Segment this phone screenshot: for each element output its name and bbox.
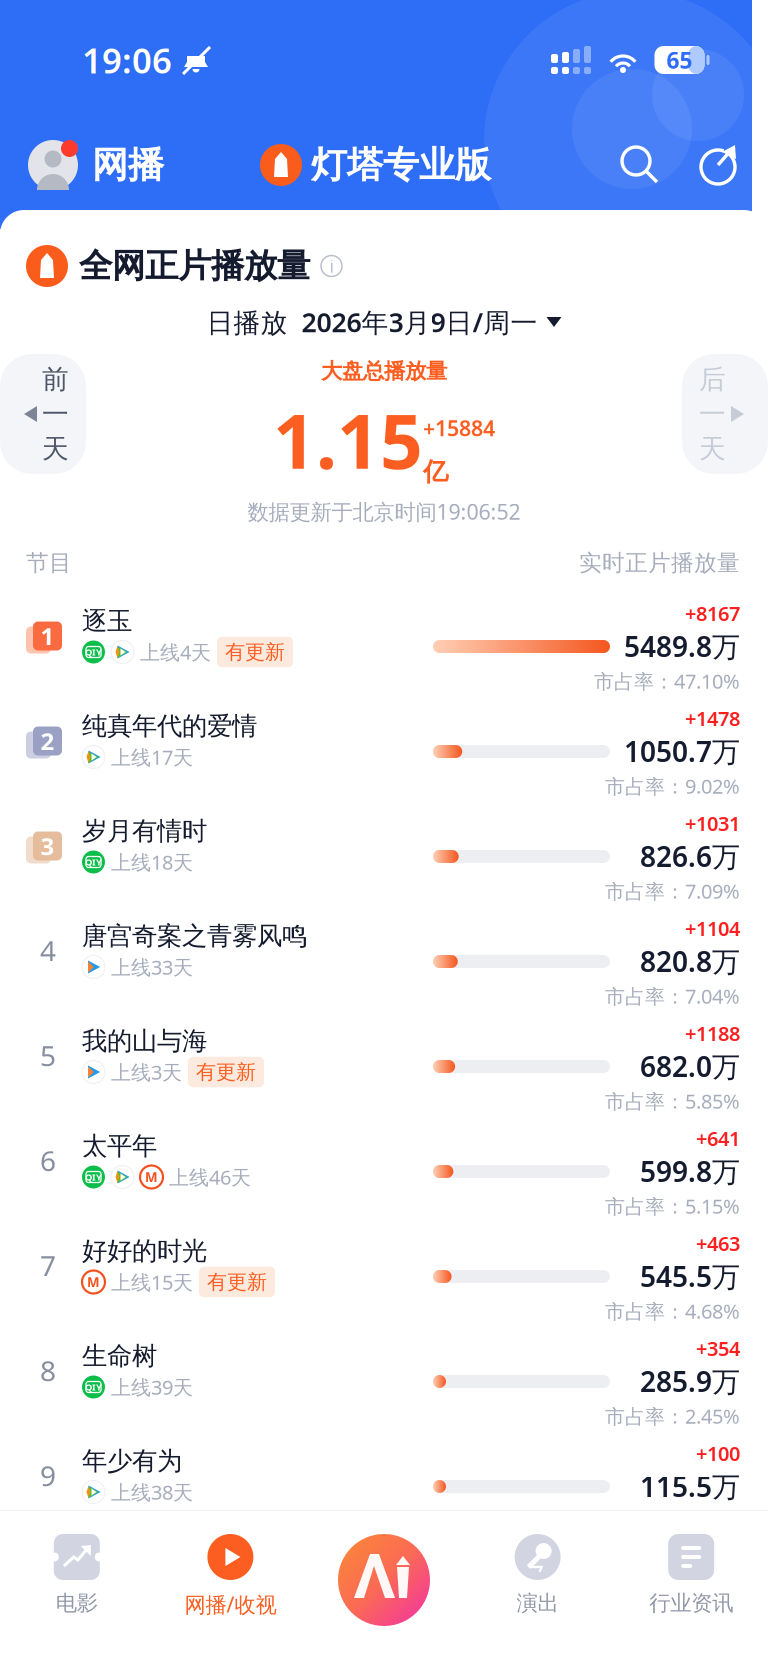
- staticText: 3: [40, 830, 54, 862]
- staticText: 820.8万: [640, 943, 740, 980]
- staticText: 65: [666, 45, 692, 75]
- staticText: 市占率：47.10%: [594, 668, 740, 694]
- button[interactable]: 分享: [692, 139, 744, 191]
- staticText: 好好的时光: [82, 1235, 207, 1266]
- staticText: 生命树: [82, 1340, 157, 1371]
- button[interactable]: 行业资讯: [614, 1534, 768, 1644]
- staticText: +100: [696, 1440, 740, 1467]
- staticText: 市占率：7.04%: [605, 983, 740, 1009]
- staticText: 1: [40, 620, 54, 652]
- staticText: 太平年: [82, 1130, 157, 1161]
- staticText: +1478: [685, 705, 740, 732]
- staticText: 上线3天: [111, 1059, 182, 1085]
- staticText: 7: [40, 1247, 56, 1284]
- button[interactable]: 网播: [20, 127, 170, 203]
- staticText: 天: [699, 432, 726, 465]
- staticText: 电影: [56, 1590, 98, 1616]
- staticText: 全网正片播放量: [79, 245, 310, 286]
- staticText: 上线46天: [169, 1164, 251, 1190]
- staticText: QIY: [85, 646, 102, 658]
- staticText: +8167: [685, 600, 740, 627]
- staticText: +15884: [423, 414, 495, 442]
- staticText: 1050.7万: [624, 733, 740, 770]
- staticText: 上线39天: [111, 1374, 193, 1400]
- staticText: 一: [42, 398, 69, 430]
- staticText: 大盘总播放量: [321, 358, 447, 384]
- staticText: 数据更新于北京时间19:06:52: [247, 497, 520, 526]
- staticText: 天: [42, 432, 69, 465]
- staticText: 我的山与海: [82, 1025, 207, 1056]
- staticText: 682.0万: [640, 1048, 740, 1085]
- staticText: 唐宫奇案之青雾风鸣: [82, 920, 307, 951]
- staticText: 灯塔专业版: [311, 143, 491, 187]
- button[interactable]: 日播放 2026年3月9日/周一: [0, 298, 768, 346]
- staticText: 日播放 2026年3月9日/周一: [206, 304, 537, 340]
- staticText: i: [329, 254, 333, 277]
- staticText: +1188: [685, 1020, 740, 1047]
- staticText: 115.5万: [640, 1468, 740, 1505]
- staticText: 亿: [423, 456, 448, 487]
- staticText: 上线4天: [140, 639, 211, 665]
- staticText: 行业资讯: [649, 1590, 733, 1616]
- staticText: +641: [696, 1125, 740, 1152]
- button[interactable]: 后: [682, 354, 768, 474]
- staticText: 节目: [26, 549, 72, 577]
- staticText: 599.8万: [640, 1153, 740, 1190]
- staticText: 前: [42, 363, 69, 396]
- button[interactable]: 演出: [461, 1534, 614, 1644]
- staticText: 8: [40, 1352, 56, 1389]
- staticText: QIY: [85, 856, 102, 868]
- staticText: M: [87, 1273, 100, 1291]
- staticText: +354: [696, 1335, 740, 1362]
- staticText: 5489.8万: [624, 628, 740, 665]
- staticText: 上线33天: [111, 954, 193, 980]
- staticText: 逐玉: [82, 605, 132, 636]
- staticText: 市占率：2.45%: [605, 1403, 740, 1429]
- staticText: 826.6万: [640, 838, 740, 875]
- button[interactable]: 前: [0, 354, 86, 474]
- button[interactable]: 灯塔专业版: [256, 127, 495, 203]
- staticText: 市占率：4.68%: [605, 1298, 740, 1324]
- staticText: 市占率：5.85%: [605, 1088, 740, 1114]
- staticText: 4: [40, 932, 56, 969]
- button[interactable]: 搜索: [614, 139, 666, 191]
- button[interactable]: 灯塔: [307, 1534, 461, 1670]
- staticText: 有更新: [207, 1270, 267, 1294]
- staticText: 1.15: [273, 390, 423, 489]
- staticText: 5: [40, 1037, 56, 1074]
- staticText: 岁月有情时: [82, 815, 207, 846]
- button[interactable]: 网播/收视: [154, 1534, 307, 1644]
- staticText: QIY: [85, 1171, 102, 1183]
- staticText: 年少有为: [82, 1445, 182, 1476]
- staticText: 一: [699, 398, 726, 430]
- staticText: 市占率：9.02%: [605, 773, 740, 799]
- staticText: 19:06: [82, 37, 172, 83]
- staticText: 实时正片播放量: [579, 549, 740, 577]
- staticText: 网播/收视: [184, 1590, 276, 1618]
- staticText: 2: [40, 725, 54, 757]
- staticText: +1031: [685, 810, 740, 837]
- staticText: 市占率：7.09%: [605, 878, 740, 904]
- staticText: 纯真年代的爱情: [82, 710, 257, 741]
- staticText: 上线38天: [111, 1479, 193, 1505]
- staticText: 上线15天: [111, 1269, 193, 1295]
- staticText: +1104: [685, 915, 740, 942]
- staticText: 有更新: [225, 640, 285, 664]
- staticText: M: [145, 1168, 158, 1186]
- staticText: 9: [40, 1457, 56, 1494]
- staticText: 演出: [517, 1590, 559, 1616]
- staticText: 6: [40, 1142, 56, 1179]
- staticText: 上线17天: [111, 744, 193, 770]
- staticText: 545.5万: [640, 1258, 740, 1295]
- button[interactable]: 电影: [0, 1534, 154, 1644]
- staticText: 上线18天: [111, 849, 193, 875]
- staticText: 后: [699, 363, 726, 396]
- staticText: 网播: [92, 143, 164, 187]
- staticText: 市占率：5.15%: [605, 1193, 740, 1219]
- staticText: 有更新: [196, 1060, 256, 1084]
- staticText: 285.9万: [640, 1363, 740, 1400]
- staticText: QIY: [85, 1381, 102, 1393]
- staticText: +463: [696, 1230, 740, 1257]
